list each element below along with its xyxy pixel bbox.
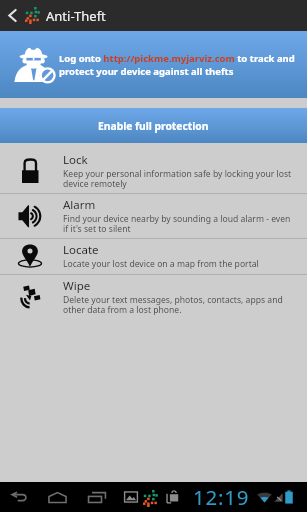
staticText: Log onto http://pickme.myjarviz.com to t… bbox=[59, 52, 297, 78]
staticText: Lock bbox=[63, 152, 88, 168]
staticText: Delete your text messages, photos, conta… bbox=[63, 294, 294, 315]
button[interactable]: Locate bbox=[0, 239, 307, 274]
staticText: Alarm bbox=[63, 197, 96, 213]
button[interactable]: Recent apps bbox=[81, 482, 113, 512]
button[interactable]: Lock bbox=[0, 149, 307, 193]
button[interactable]: Home bbox=[41, 482, 73, 512]
staticText: Find your device nearby by sounding a lo… bbox=[63, 213, 294, 234]
button[interactable]: Alarm bbox=[0, 194, 307, 238]
button[interactable]: Back bbox=[3, 482, 35, 512]
staticText: Locate bbox=[63, 242, 99, 258]
staticText: Enable full protection bbox=[98, 119, 209, 133]
staticText: 12:19 bbox=[193, 483, 250, 511]
staticText: Wipe bbox=[63, 278, 91, 294]
button[interactable]: Enable full protection bbox=[0, 108, 307, 143]
button[interactable]: Back bbox=[0, 0, 24, 31]
staticText: Locate your lost device on a map from th… bbox=[63, 258, 259, 270]
staticText: Keep your personal information safe by l… bbox=[63, 168, 294, 189]
staticText: Anti-Theft bbox=[46, 7, 106, 25]
button[interactable]: Wipe bbox=[0, 275, 307, 319]
button[interactable]: Log onto http://pickme.myjarviz.com to t… bbox=[0, 31, 307, 98]
